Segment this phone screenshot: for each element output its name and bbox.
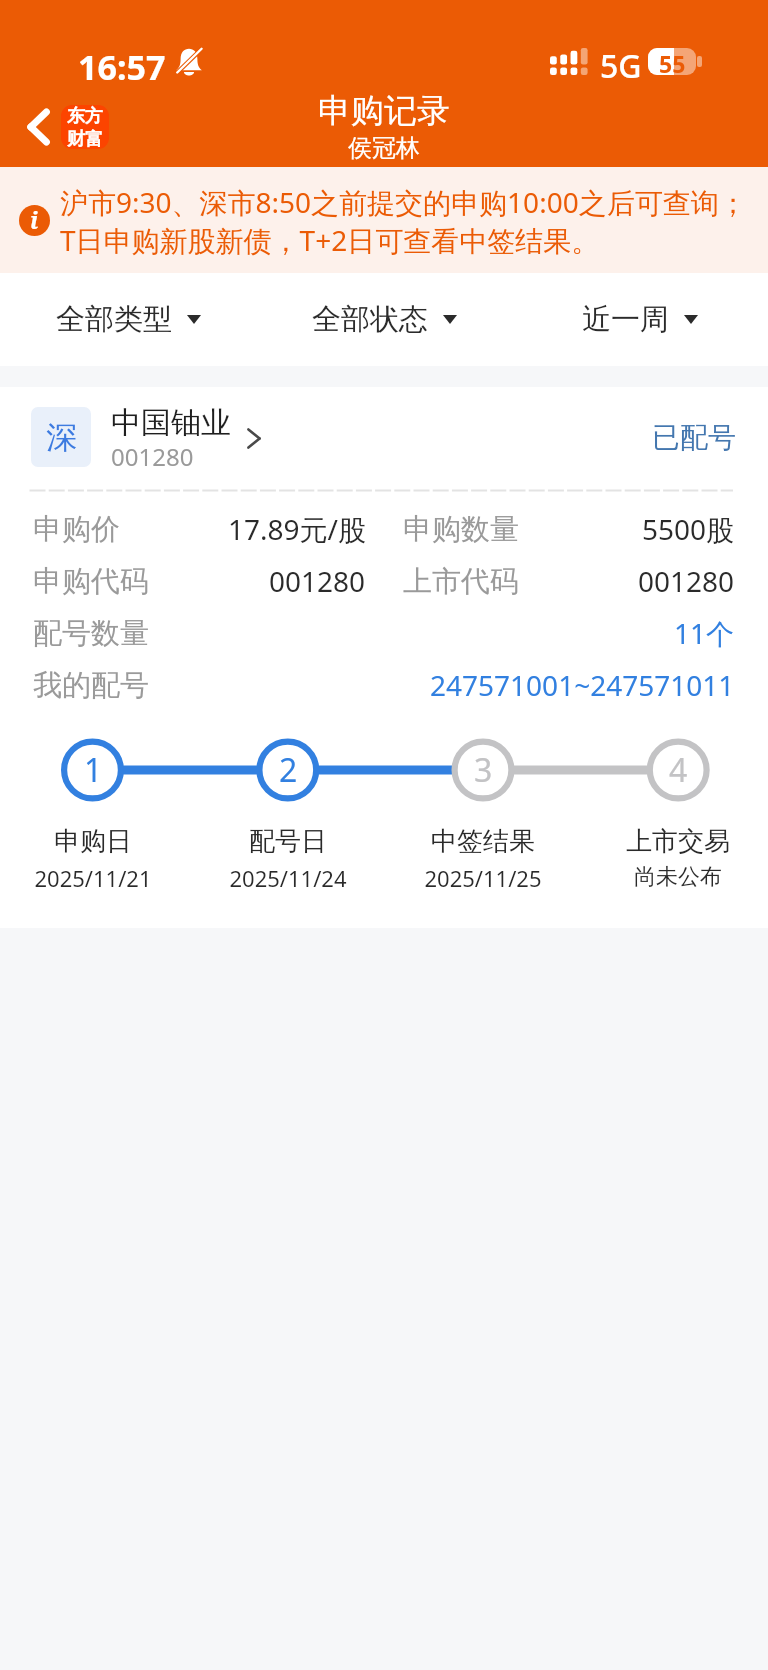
button[interactable]: East Money logo [61, 105, 109, 149]
staticText: 东方 [67, 105, 103, 128]
staticText: 尚未公布 [634, 863, 722, 891]
staticText: 近一周 [582, 301, 669, 338]
staticText: 申购日 [54, 825, 132, 858]
staticText: 247571001~247571011 [430, 666, 735, 704]
staticText: 上市交易 [626, 825, 730, 858]
staticText: 2 [279, 748, 298, 792]
staticText: 1 [84, 748, 103, 792]
staticText: 全部状态 [312, 301, 428, 338]
staticText: 申购代码 [33, 563, 149, 600]
staticText: i [30, 205, 39, 235]
button[interactable]: 近一周 [512, 273, 768, 366]
staticText: 中国铀业 [111, 404, 231, 442]
staticText: 配号数量 [33, 615, 149, 652]
staticText: 3 [474, 748, 493, 792]
staticText: 已配号 [652, 420, 736, 455]
staticText: 001280 [638, 562, 735, 600]
staticText: 申购价 [33, 511, 120, 548]
staticText: 16:57 [78, 44, 166, 90]
staticText: 财富 [67, 128, 103, 149]
staticText: 11个 [674, 614, 735, 652]
staticText: 001280 [269, 562, 366, 600]
button[interactable]: Back [14, 103, 62, 151]
staticText: 17.89元/股 [228, 510, 366, 548]
staticText: 4 [669, 748, 688, 792]
staticText: 中签结果 [431, 825, 535, 858]
staticText: 上市代码 [403, 563, 519, 600]
button[interactable]: 中国铀业 001280 已配号 [0, 387, 768, 489]
staticText: 001280 [111, 440, 194, 473]
staticText: 申购记录 [318, 90, 450, 132]
staticText: 深 [46, 418, 77, 457]
staticText: 55 [659, 48, 686, 75]
staticText: 5500股 [642, 510, 735, 548]
staticText: 我的配号 [33, 667, 149, 704]
staticText: 配号日 [249, 825, 327, 858]
staticText: 2025/11/24 [229, 863, 347, 893]
staticText: T日申购新股新债，T+2日可查看中签结果。 [60, 221, 600, 259]
staticText: 全部类型 [56, 301, 172, 338]
staticText: 2025/11/25 [424, 863, 542, 893]
staticText: 沪市9:30、深市8:50之前提交的申购10:00之后可查询； [60, 183, 747, 221]
button[interactable]: 全部类型 [0, 273, 256, 366]
staticText: 5G [600, 44, 642, 88]
staticText: 2025/11/21 [34, 863, 152, 893]
button[interactable]: 全部状态 [256, 273, 512, 366]
staticText: 申购数量 [403, 511, 519, 548]
staticText: 侯冠林 [348, 133, 420, 163]
